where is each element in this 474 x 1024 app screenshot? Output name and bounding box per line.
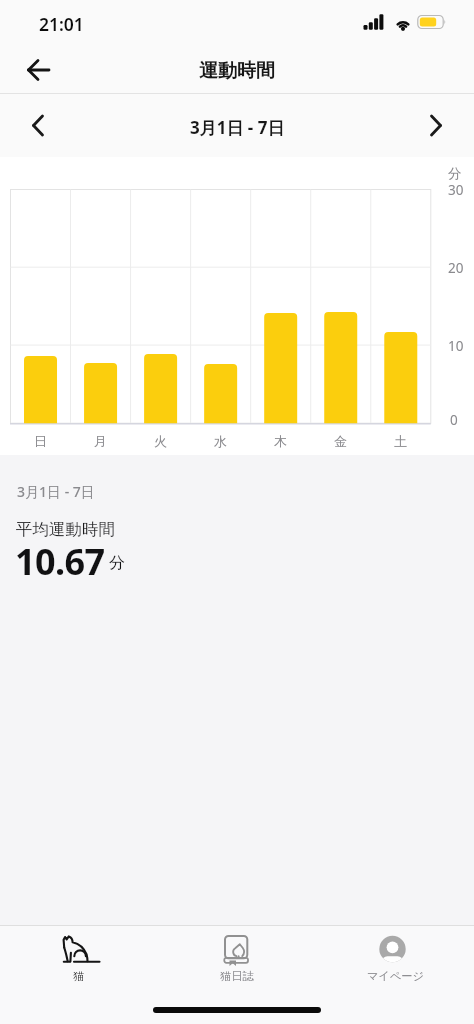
staticText: 月 (94, 433, 107, 449)
staticText: 運動時間 (199, 59, 275, 83)
staticText: 金 (334, 433, 347, 449)
staticText: 10 (448, 337, 464, 355)
staticText: 平均運動時間 (16, 519, 115, 540)
button[interactable] (14, 100, 62, 152)
staticText: 日 (34, 433, 47, 449)
button[interactable]: マイページ (316, 926, 474, 1004)
staticText: 火 (154, 433, 167, 449)
staticText: 猫 (73, 969, 85, 983)
staticText: 30 (448, 181, 464, 199)
staticText: 0 (450, 411, 458, 429)
staticText: 土 (394, 433, 407, 449)
staticText: 3月1日 - 7日 (190, 116, 285, 139)
staticText: 木 (274, 433, 287, 449)
button[interactable] (14, 48, 62, 92)
staticText: 猫日誌 (220, 969, 254, 983)
button[interactable]: 猫日誌 (158, 926, 316, 1004)
staticText: 分 (109, 553, 125, 573)
staticText: 21:01 (39, 12, 84, 36)
staticText: 3月1日 - 7日 (17, 482, 95, 501)
staticText: 分 (448, 165, 462, 182)
staticText: 10.67 (15, 537, 105, 586)
staticText: 水 (214, 433, 227, 449)
staticText: マイページ (367, 969, 424, 983)
button[interactable] (412, 100, 460, 152)
button[interactable]: 猫 (0, 926, 158, 1004)
staticText: 20 (448, 259, 464, 277)
